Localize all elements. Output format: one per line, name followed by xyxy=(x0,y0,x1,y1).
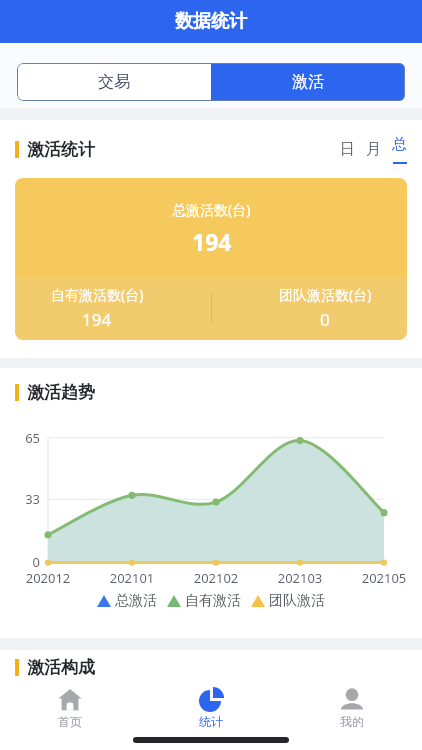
staticText: 33 xyxy=(20,490,40,508)
staticText: 激活 xyxy=(292,72,324,92)
staticText: 0 xyxy=(20,553,40,571)
staticText: 65 xyxy=(20,429,40,447)
staticText: 我的 xyxy=(340,714,364,729)
button[interactable]: 总激活 xyxy=(97,592,157,610)
button[interactable]: 日 xyxy=(340,140,355,159)
staticText: 激活趋势 xyxy=(27,382,95,403)
button[interactable]: 自有激活 xyxy=(167,592,241,610)
button[interactable]: 我的 xyxy=(281,688,422,729)
staticText: 202102 xyxy=(192,569,240,587)
staticText: 202105 xyxy=(360,569,408,587)
staticText: 自有激活数(台) xyxy=(51,285,144,304)
button[interactable]: 交易 xyxy=(17,63,211,101)
staticText: 激活构成 xyxy=(27,657,95,678)
button[interactable]: 自有激活数(台) xyxy=(15,277,179,340)
staticText: 194 xyxy=(192,226,232,257)
button[interactable]: 首页 xyxy=(0,688,140,729)
button[interactable]: 总 xyxy=(392,135,407,164)
button[interactable]: 月 xyxy=(366,140,381,159)
staticText: 首页 xyxy=(58,714,82,729)
staticText: 202103 xyxy=(276,569,324,587)
staticText: 总激活 xyxy=(115,592,157,610)
button[interactable]: 统计 xyxy=(140,688,281,729)
staticText: 数据统计 xyxy=(175,10,247,33)
staticText: 194 xyxy=(82,308,112,331)
staticText: 自有激活 xyxy=(185,592,241,610)
staticText: 0 xyxy=(320,308,330,331)
button[interactable]: 团队激活数(台) xyxy=(243,277,407,340)
button[interactable]: 总激活数(台) xyxy=(15,178,407,277)
staticText: 团队激活数(台) xyxy=(279,285,372,304)
staticText: 团队激活 xyxy=(269,592,325,610)
staticText: 总 xyxy=(392,135,407,154)
staticText: 统计 xyxy=(199,714,223,729)
button[interactable]: 激活 xyxy=(211,63,405,101)
staticText: 202012 xyxy=(24,569,72,587)
staticText: 激活统计 xyxy=(27,139,95,160)
staticText: 交易 xyxy=(98,72,130,92)
staticText: 总激活数(台) xyxy=(172,200,251,219)
staticText: 202101 xyxy=(108,569,156,587)
button[interactable]: 团队激活 xyxy=(251,592,325,610)
